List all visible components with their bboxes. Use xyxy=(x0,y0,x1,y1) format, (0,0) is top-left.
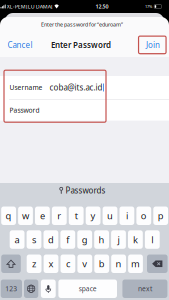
button[interactable]: i xyxy=(119,206,134,225)
staticText: w xyxy=(22,210,29,222)
button[interactable]: z xyxy=(27,254,41,273)
button[interactable]: b xyxy=(94,254,109,273)
button[interactable]: d xyxy=(43,230,58,249)
staticText: x xyxy=(48,258,53,270)
staticText: 123 xyxy=(5,284,17,293)
button[interactable]: r xyxy=(52,206,67,225)
staticText: e xyxy=(40,210,45,222)
button[interactable]: p xyxy=(153,206,168,225)
button[interactable]: Passwords xyxy=(55,183,109,198)
staticText: v xyxy=(82,258,87,270)
staticText: g xyxy=(82,233,88,246)
staticText: Username xyxy=(9,83,42,92)
button[interactable]: Switch keyboard xyxy=(24,279,38,298)
button[interactable]: g xyxy=(77,230,92,249)
button[interactable]: x xyxy=(44,254,58,273)
staticText: o xyxy=(141,210,147,222)
button[interactable]: Dictation xyxy=(41,279,56,298)
staticText: b xyxy=(99,258,105,270)
staticText: t xyxy=(75,210,78,222)
staticText: next xyxy=(138,284,152,293)
button[interactable]: f xyxy=(60,230,75,249)
staticText: Enter the password for “eduroam” xyxy=(41,21,123,28)
staticText: Passwords xyxy=(65,185,105,196)
button[interactable]: space xyxy=(58,279,117,298)
button[interactable]: m xyxy=(128,254,143,273)
staticText: m xyxy=(131,258,140,270)
button[interactable]: a xyxy=(10,230,24,249)
button[interactable]: y xyxy=(86,206,100,225)
button[interactable]: 123 xyxy=(1,279,22,298)
staticText: i xyxy=(126,210,128,222)
button[interactable]: h xyxy=(94,230,109,249)
button[interactable]: c xyxy=(60,254,75,273)
staticText: d xyxy=(48,233,54,246)
staticText: z xyxy=(32,258,36,270)
staticText: u xyxy=(107,210,113,222)
staticText: y xyxy=(91,210,96,222)
staticText: q xyxy=(6,210,12,222)
button[interactable]: o xyxy=(136,206,151,225)
button[interactable]: s xyxy=(27,230,41,249)
staticText: XL-PEMILU DAMAI xyxy=(7,3,53,10)
staticText: a xyxy=(15,233,20,246)
staticText: l xyxy=(151,233,153,246)
staticText: n xyxy=(116,258,122,270)
staticText: Password xyxy=(9,106,39,115)
button[interactable]: k xyxy=(128,230,143,249)
staticText: 17% xyxy=(145,4,152,9)
button[interactable]: Join xyxy=(142,37,164,52)
staticText: Enter Password xyxy=(51,40,111,50)
staticText: Cancel xyxy=(7,40,32,50)
button[interactable]: v xyxy=(77,254,92,273)
button[interactable]: q xyxy=(1,206,16,225)
staticText: p xyxy=(158,210,164,222)
button[interactable]: n xyxy=(111,254,126,273)
button[interactable]: Shift xyxy=(1,254,21,273)
staticText: Join xyxy=(146,40,160,50)
staticText: j xyxy=(117,233,119,246)
button[interactable]: w xyxy=(18,206,33,225)
staticText: h xyxy=(99,233,105,246)
button[interactable]: j xyxy=(111,230,126,249)
button[interactable]: Cancel xyxy=(3,37,37,52)
button[interactable]: u xyxy=(103,206,117,225)
staticText: 12.50 xyxy=(95,3,108,10)
staticText: k xyxy=(133,233,138,246)
staticText: c xyxy=(66,258,70,270)
button[interactable]: e xyxy=(35,206,50,225)
button[interactable]: Delete xyxy=(147,254,168,273)
staticText: s xyxy=(32,233,36,246)
button[interactable]: l xyxy=(145,230,160,249)
button[interactable]: t xyxy=(69,206,84,225)
staticText: coba@its.ac.id xyxy=(49,82,102,93)
staticText: f xyxy=(66,233,69,246)
staticText: r xyxy=(57,210,61,222)
staticText: space xyxy=(79,284,97,293)
button[interactable]: next xyxy=(122,279,167,298)
